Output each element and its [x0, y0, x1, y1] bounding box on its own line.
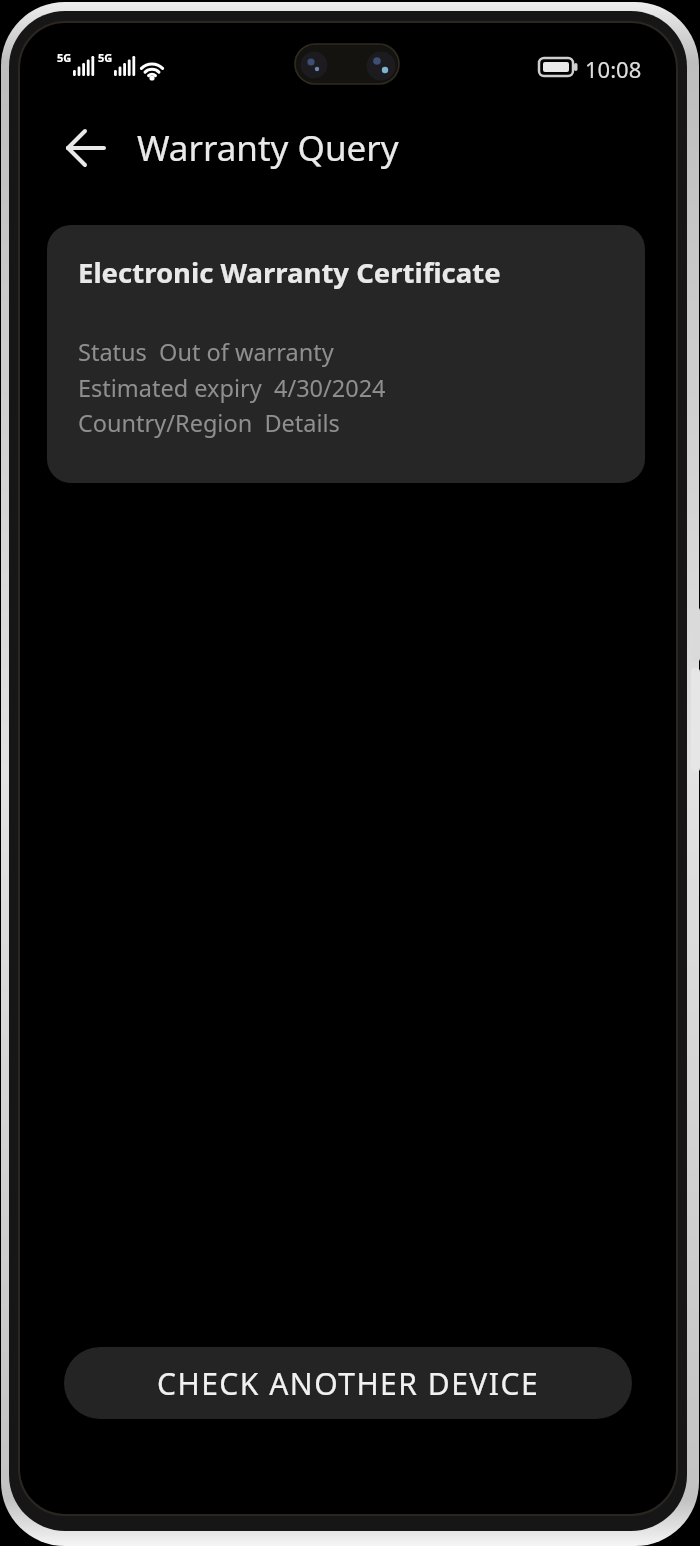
button[interactable]	[56, 124, 116, 172]
staticText: 10:08	[585, 54, 642, 84]
staticText: Country/Region Details	[78, 407, 340, 439]
staticText: 5G	[57, 50, 72, 65]
button[interactable]: Electronic Warranty Certificate	[47, 225, 645, 483]
staticText: Status Out of warranty	[78, 336, 334, 368]
staticText: Electronic Warranty Certificate	[78, 254, 501, 291]
button[interactable]: CHECK ANOTHER DEVICE	[64, 1347, 632, 1419]
staticText: CHECK ANOTHER DEVICE	[157, 1363, 540, 1404]
staticText: 5G	[98, 50, 113, 65]
staticText: Estimated expiry 4/30/2024	[78, 372, 386, 404]
staticText: Warranty Query	[137, 124, 399, 172]
